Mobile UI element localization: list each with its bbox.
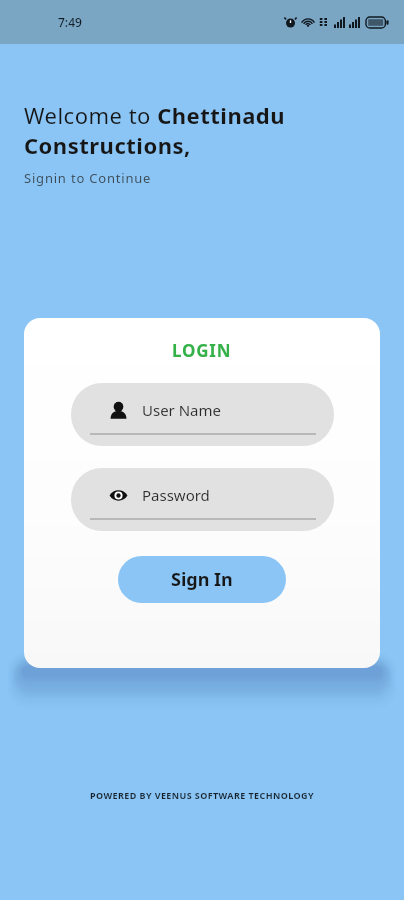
button[interactable]: Password: [71, 468, 334, 531]
staticText: Sign In: [171, 567, 233, 592]
staticText: Password: [142, 485, 210, 505]
staticText: LOGIN: [172, 339, 232, 362]
staticText: Welcome to Chettinadu Constructions,: [24, 100, 384, 160]
staticText: Signin to Continue: [24, 169, 152, 187]
staticText: POWERED BY VEENUS SOFTWARE TECHNOLOGY: [0, 789, 404, 801]
staticText: 7:49: [58, 14, 82, 30]
button[interactable]: Sign In: [118, 556, 286, 603]
button[interactable]: User Name: [71, 383, 334, 446]
staticText: User Name: [142, 400, 222, 420]
